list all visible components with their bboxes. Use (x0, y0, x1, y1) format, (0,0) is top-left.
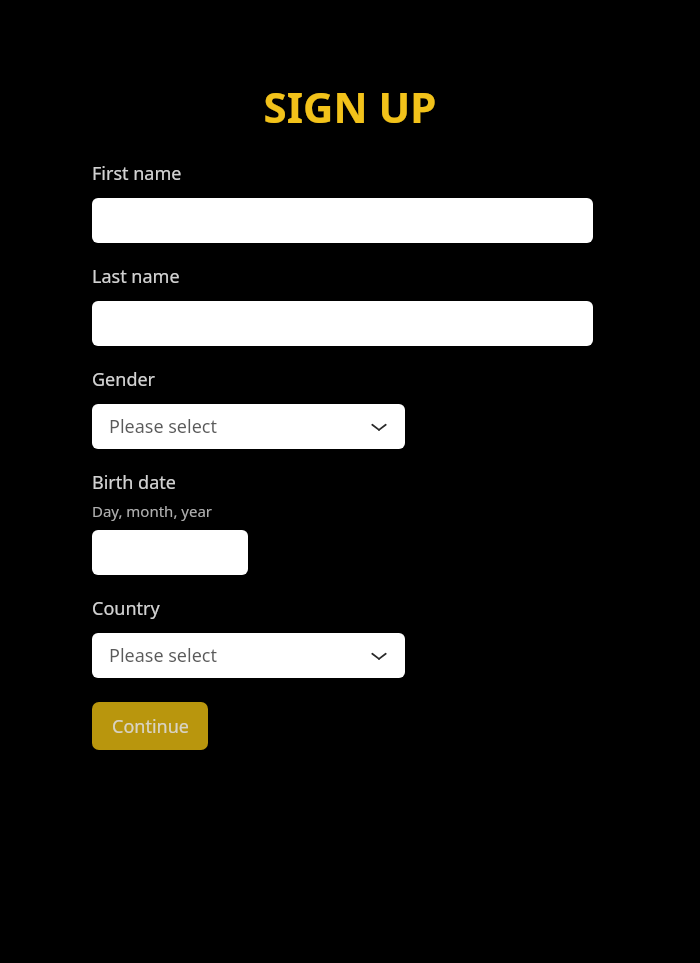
staticText: Day, month, year (92, 501, 213, 521)
button[interactable] (92, 198, 593, 243)
staticText: Last name (92, 264, 180, 289)
button[interactable]: Please select (92, 633, 405, 678)
staticText: Please select (109, 643, 217, 668)
staticText: Continue (112, 714, 189, 739)
staticText: SIGN UP (0, 78, 700, 135)
staticText: First name (92, 161, 182, 186)
staticText: Please select (109, 414, 217, 439)
staticText: Country (92, 596, 160, 621)
button[interactable]: Continue (92, 702, 208, 750)
button[interactable]: Please select (92, 404, 405, 449)
staticText: Birth date (92, 470, 176, 495)
staticText: Gender (92, 367, 156, 392)
button[interactable] (92, 301, 593, 346)
button[interactable] (92, 530, 248, 575)
